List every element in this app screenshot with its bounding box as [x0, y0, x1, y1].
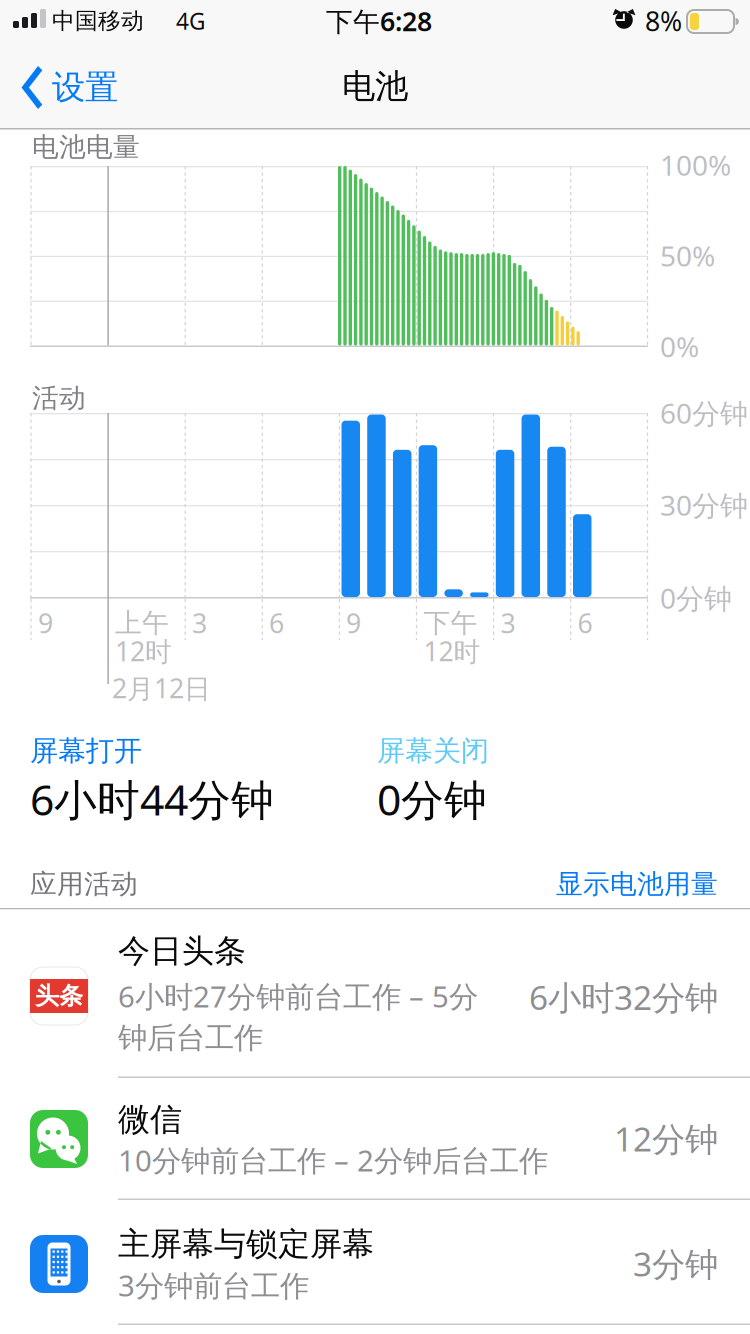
staticText: 9: [38, 605, 53, 641]
staticText: 12分钟: [614, 1116, 718, 1161]
staticText: 3: [500, 605, 515, 641]
staticText: 中国移动: [52, 7, 144, 35]
button[interactable]: 头条: [0, 909, 750, 1078]
staticText: 电池电量: [32, 131, 140, 163]
staticText: 钟后台工作: [118, 1020, 263, 1056]
staticText: 显示电池用量: [556, 868, 718, 900]
staticText: 6小时27分钟前台工作 – 5分: [118, 976, 478, 1015]
staticText: 设置: [52, 67, 118, 108]
staticText: 6: [577, 605, 592, 641]
button[interactable]: 主屏幕与锁定屏幕: [0, 1200, 750, 1325]
staticText: 下午6:28: [326, 3, 432, 39]
staticText: 10分钟前台工作 – 2分钟后台工作: [118, 1140, 548, 1179]
button[interactable]: 返回设置: [0, 40, 160, 128]
staticText: 电池: [342, 66, 408, 107]
staticText: 活动: [32, 382, 86, 414]
button[interactable]: 微信: [0, 1078, 750, 1200]
staticText: 0分钟: [660, 579, 732, 617]
staticText: 下午: [423, 607, 477, 639]
staticText: 6: [269, 605, 284, 641]
staticText: 50%: [660, 237, 715, 274]
staticText: 60分钟: [660, 394, 748, 432]
staticText: 3: [192, 605, 207, 641]
staticText: 屏幕关闭: [377, 734, 489, 768]
staticText: 6小时32分钟: [529, 975, 718, 1019]
staticText: 12时: [115, 633, 172, 669]
staticText: 上午: [115, 607, 169, 639]
staticText: 9: [346, 605, 361, 641]
staticText: 100%: [660, 146, 731, 184]
staticText: 头条: [35, 981, 83, 1011]
staticText: 主屏幕与锁定屏幕: [118, 1224, 374, 1264]
staticText: 微信: [118, 1100, 182, 1139]
staticText: 应用活动: [30, 868, 138, 900]
staticText: 2月12日: [112, 670, 211, 706]
staticText: 屏幕打开: [30, 734, 142, 768]
staticText: 30分钟: [660, 486, 748, 524]
staticText: 今日头条: [118, 931, 246, 971]
staticText: 8%: [645, 3, 682, 39]
staticText: 6小时44分钟: [30, 771, 274, 827]
staticText: 0%: [660, 328, 699, 365]
staticText: 4G: [176, 6, 206, 36]
staticText: 0分钟: [377, 771, 487, 827]
button[interactable]: 显示电池用量: [556, 868, 718, 900]
staticText: 12时: [423, 633, 480, 669]
staticText: 3分钟: [633, 1241, 718, 1286]
staticText: 3分钟前台工作: [118, 1265, 309, 1304]
